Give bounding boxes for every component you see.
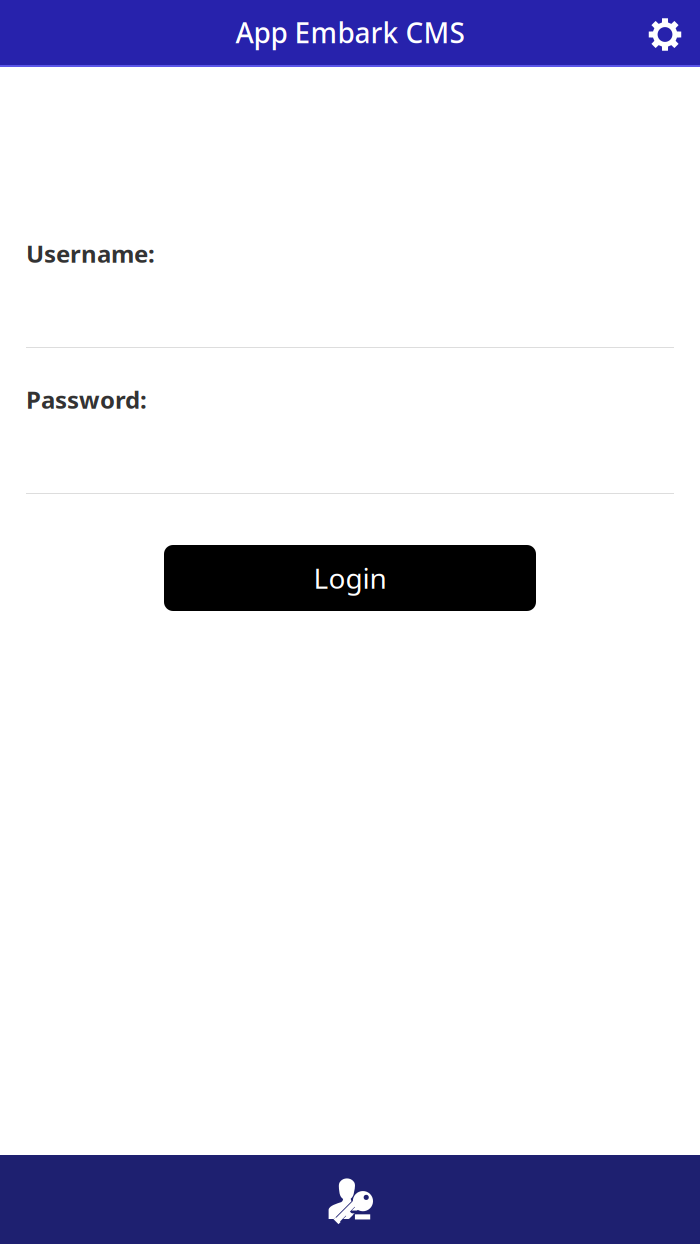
staticText: App Embark CMS bbox=[235, 14, 464, 51]
staticText: Username: bbox=[26, 238, 155, 269]
button[interactable]: Username field bbox=[26, 240, 674, 348]
button[interactable]: Settings bbox=[639, 0, 691, 65]
button[interactable]: Password field bbox=[26, 386, 674, 494]
button[interactable]: Account login bbox=[0, 1155, 700, 1244]
button[interactable]: Login bbox=[164, 545, 536, 611]
staticText: Password: bbox=[26, 384, 147, 415]
staticText: Login bbox=[313, 559, 386, 597]
